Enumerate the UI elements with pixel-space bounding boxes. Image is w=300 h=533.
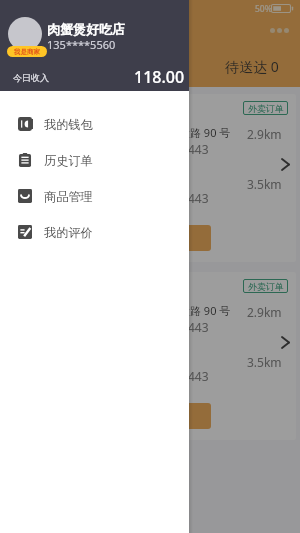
staticText: 3.5km	[247, 176, 282, 192]
staticText: 肉蟹煲好吃店	[47, 21, 125, 37]
button[interactable]: 历史订单	[0, 142, 189, 178]
staticText: 3.5km	[247, 354, 282, 370]
button[interactable]: 确认送达	[142, 225, 211, 251]
button[interactable]: 订单号 1805120021	[4, 94, 296, 262]
button[interactable]: 待送达 0	[202, 45, 300, 87]
staticText: 今日收入	[13, 72, 49, 83]
button[interactable]: 订单号 1805120021	[4, 272, 296, 440]
button[interactable]: 待取货 0	[102, 45, 202, 87]
staticText: 50%	[255, 3, 272, 15]
staticText: 外卖订单	[248, 281, 284, 292]
staticText: 2.9km	[247, 304, 282, 320]
staticText: 历史订单	[44, 153, 93, 168]
staticText: 待取货 0	[125, 57, 179, 76]
staticText: 待接单 0	[25, 57, 79, 76]
staticText: 118.00	[134, 66, 185, 88]
staticText: 商品管理	[44, 189, 93, 204]
button[interactable]: 商品管理	[0, 178, 189, 214]
staticText: 135****5560	[47, 37, 116, 52]
button[interactable]: 确认送达	[142, 403, 211, 429]
staticText: 浙江省杭州市西湖区临江路文一西大路 90 号	[14, 303, 231, 318]
staticText: 收货人李女士女士女士136****3443	[14, 319, 209, 335]
staticText: 我的评价	[44, 225, 93, 240]
staticText: 外卖订单	[248, 103, 284, 114]
staticText: 我是商家	[14, 48, 40, 56]
staticText: 发货人王先生先生先生138****3443	[14, 190, 209, 206]
button[interactable]: 我的评价	[0, 214, 189, 250]
staticText: 待送达 0	[225, 57, 279, 76]
staticText: 浙江省杭州市西湖区临江路文一西大路 90 号	[14, 125, 231, 140]
button[interactable]: 待接单 0	[2, 45, 102, 87]
button[interactable]: 我的钱包	[0, 106, 189, 142]
staticText: 我的钱包	[44, 117, 93, 132]
button[interactable]: More options	[270, 22, 294, 38]
staticText: 收货人李女士女士女士136****3443	[14, 141, 209, 157]
staticText: 2.9km	[247, 126, 282, 142]
staticText: 发货人王先生先生先生138****3443	[14, 368, 209, 384]
